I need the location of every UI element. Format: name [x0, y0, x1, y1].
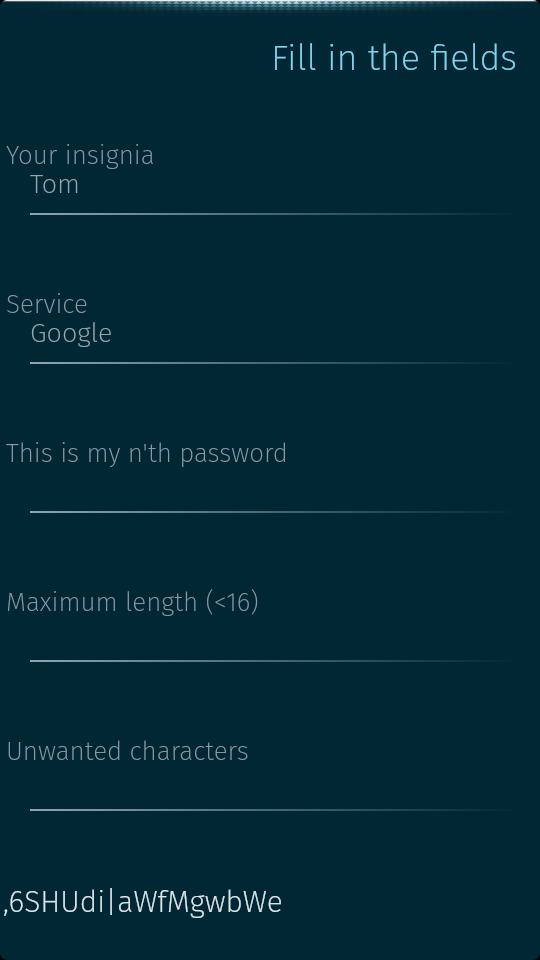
button[interactable]: Service [0, 280, 540, 366]
staticText: Your insignia [6, 140, 155, 171]
staticText: Google [30, 317, 113, 349]
staticText: Fill in the fields [0, 36, 517, 79]
staticText: Maximum length (<16) [6, 587, 259, 618]
button[interactable]: Maximum length (<16) [0, 578, 540, 664]
button[interactable]: Your insignia [0, 131, 540, 217]
staticText: Unwanted characters [6, 736, 249, 767]
staticText: ,6SHUdi|aWfMgwbWe [3, 884, 283, 920]
button[interactable]: Unwanted characters [0, 727, 540, 813]
staticText: Tom [30, 168, 80, 200]
staticText: Service [6, 289, 88, 320]
staticText: This is my n'th password [6, 438, 288, 469]
button[interactable]: This is my n'th password [0, 429, 540, 515]
